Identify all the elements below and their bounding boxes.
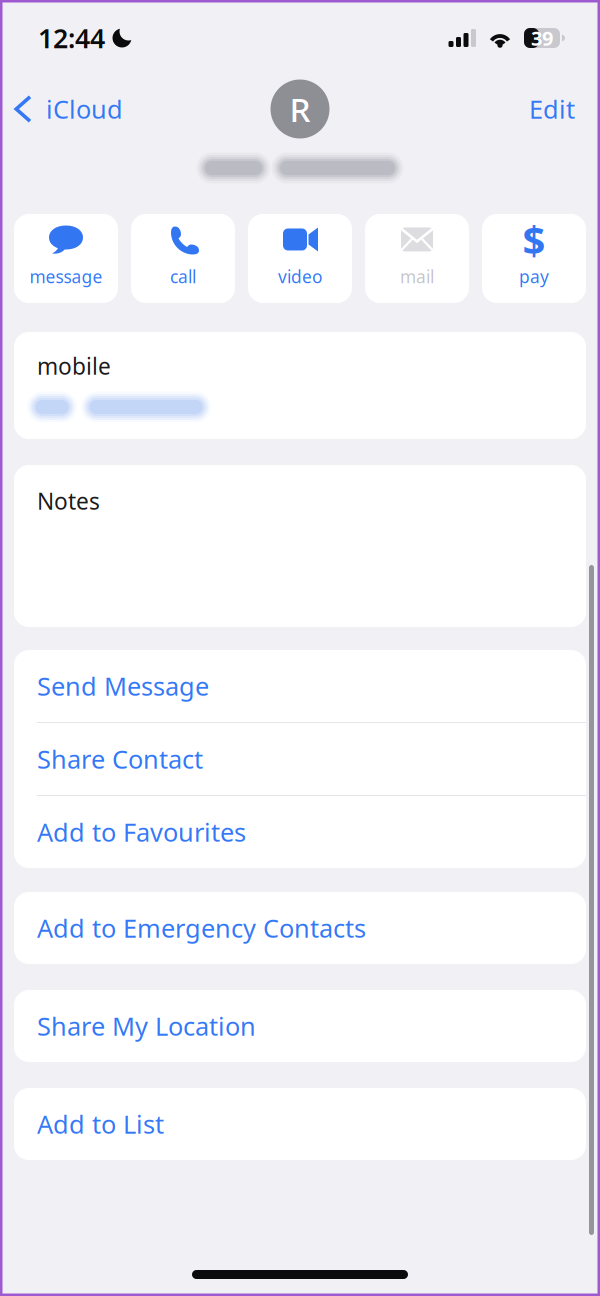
button[interactable]: video: [248, 214, 352, 303]
staticText: mail: [400, 265, 434, 288]
staticText: Share Contact: [37, 742, 203, 776]
staticText: mobile: [37, 351, 111, 381]
button[interactable]: Notes: [14, 465, 586, 627]
button[interactable]: Edit: [515, 81, 589, 137]
staticText: iCloud: [46, 92, 123, 126]
staticText: R: [289, 87, 310, 131]
staticText: Add to List: [37, 1107, 164, 1141]
staticText: Edit: [529, 92, 575, 126]
button[interactable]: Send Message: [14, 650, 586, 722]
button[interactable]: Share Contact: [14, 723, 586, 795]
button[interactable]: message: [14, 214, 118, 303]
staticText: pay: [519, 265, 549, 288]
staticText: 39: [531, 25, 553, 51]
staticText: video: [278, 265, 322, 288]
staticText: Share My Location: [37, 1009, 256, 1043]
button[interactable]: call: [131, 214, 235, 303]
staticText: $: [522, 213, 545, 266]
button[interactable]: Share My Location: [14, 990, 586, 1062]
staticText: call: [170, 265, 196, 288]
button[interactable]: iCloud: [0, 81, 137, 137]
button[interactable]: Add to Emergency Contacts: [14, 892, 586, 964]
staticText: Add to Emergency Contacts: [37, 911, 366, 945]
staticText: 12:44: [38, 20, 105, 56]
button[interactable]: $: [482, 214, 586, 303]
button[interactable]: mail: [365, 214, 469, 303]
button[interactable]: Add to Favourites: [14, 796, 586, 868]
button[interactable]: mobile: [14, 332, 586, 439]
staticText: Notes: [37, 486, 100, 516]
staticText: Add to Favourites: [37, 815, 246, 849]
staticText: Send Message: [37, 669, 209, 703]
staticText: message: [29, 265, 102, 288]
button[interactable]: Add to List: [14, 1088, 586, 1160]
